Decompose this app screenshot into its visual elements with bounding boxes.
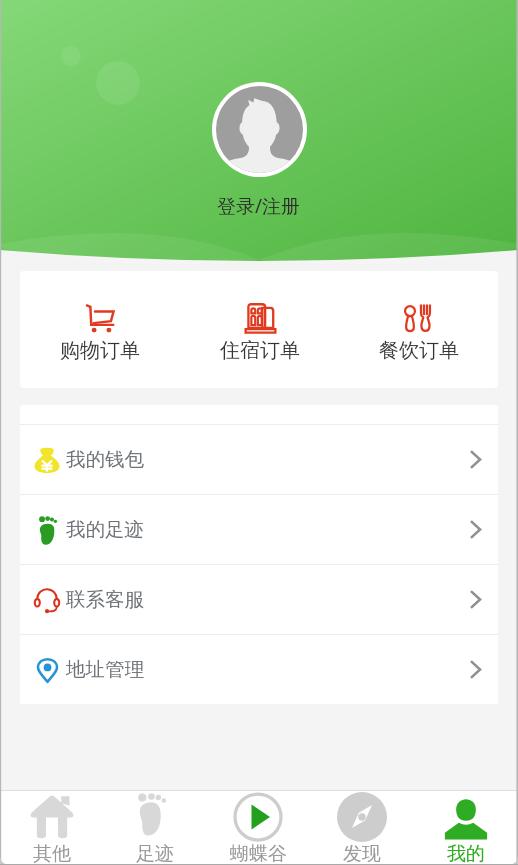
staticText: 地址管理 (66, 657, 144, 682)
staticText: 其他 (33, 842, 71, 865)
staticText: 我的足迹 (66, 517, 144, 542)
button[interactable]: 地址管理 (20, 635, 498, 704)
button[interactable]: 其他 (0, 791, 103, 865)
staticText: 我的 (447, 842, 485, 865)
staticText: 足迹 (136, 842, 174, 865)
staticText: 我的钱包 (66, 447, 144, 472)
button[interactable]: 登录/注册 (217, 193, 301, 219)
staticText: 住宿订单 (220, 338, 300, 363)
button[interactable]: 联系客服 (20, 565, 498, 634)
button[interactable]: 我的 (414, 791, 518, 865)
staticText: 联系客服 (66, 587, 144, 612)
button[interactable]: 住宿订单 (180, 271, 339, 388)
button[interactable]: 足迹 (103, 791, 206, 865)
button[interactable]: 餐饮订单 (339, 271, 498, 388)
button[interactable]: 我的钱包 (20, 425, 498, 494)
button[interactable]: 发现 (310, 791, 414, 865)
staticText: 购物订单 (60, 338, 140, 363)
staticText: 蝴蝶谷 (230, 842, 287, 865)
button[interactable]: 我的足迹 (20, 495, 498, 564)
button[interactable]: 购物订单 (20, 271, 180, 388)
staticText: 发现 (343, 842, 381, 865)
button[interactable]: 蝴蝶谷 (206, 791, 310, 865)
staticText: 餐饮订单 (379, 338, 459, 363)
